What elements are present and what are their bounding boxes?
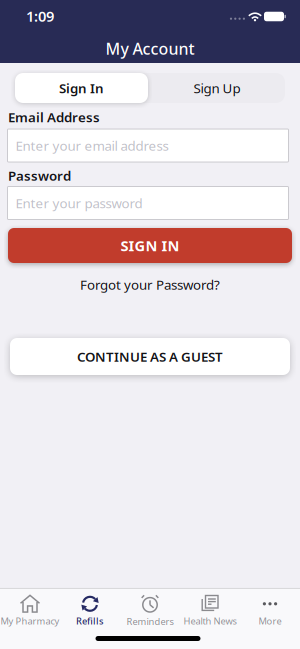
staticText: Reminders [126,615,173,628]
staticText: Refills [76,615,104,627]
staticText: Health News [183,615,236,627]
staticText: My Pharmacy [0,615,59,627]
button[interactable]: Sign In [15,73,148,103]
button[interactable]: Sign Up [150,74,283,102]
button[interactable]: Reminders [118,591,182,631]
staticText: Sign Up [193,79,240,97]
staticText: Email Address [8,108,100,126]
staticText: Enter your email address [15,137,168,154]
button[interactable]: Enter your password [7,186,288,219]
staticText: CONTINUE AS A GUEST [77,348,223,365]
staticText: Sign In [59,79,104,97]
staticText: Password [8,167,71,184]
staticText: More [258,615,281,627]
button[interactable]: CONTINUE AS A GUEST [10,338,290,375]
button[interactable]: My Pharmacy [0,591,62,631]
button[interactable]: SIGN IN [8,228,292,263]
staticText: My Account [105,38,194,59]
button[interactable]: Forgot your Password? [80,276,220,293]
staticText: Forgot your Password? [80,276,220,293]
staticText: Enter your password [15,194,142,212]
button[interactable]: More [238,591,300,631]
staticText: 1:09 [26,6,54,26]
staticText: SIGN IN [120,236,179,255]
button[interactable]: Health News [178,591,242,631]
button[interactable]: Enter your email address [7,129,288,162]
button[interactable]: Refills [58,591,122,631]
